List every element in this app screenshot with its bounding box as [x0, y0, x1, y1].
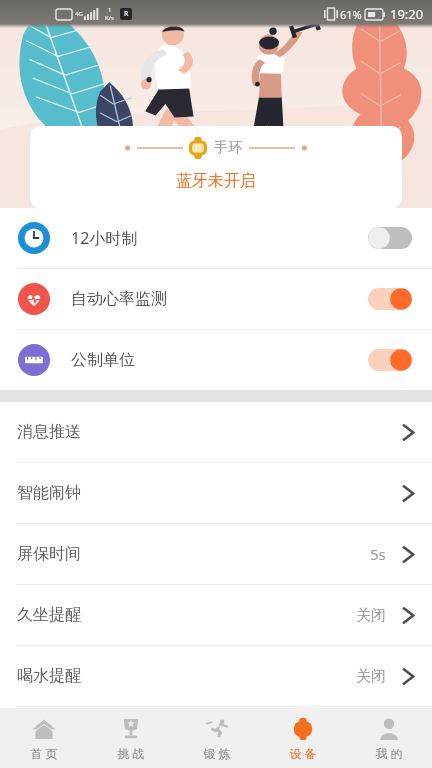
staticText: 屏保时间: [17, 544, 81, 564]
staticText: 自动心率监测: [71, 289, 167, 309]
button[interactable]: 公制单位 开: [368, 349, 412, 371]
button[interactable]: 我 的: [346, 708, 432, 768]
staticText: 关闭: [356, 606, 386, 625]
staticText: 设 备: [289, 745, 317, 761]
button[interactable]: 12小时制: [0, 208, 432, 268]
button[interactable]: 公制单位: [0, 330, 432, 390]
staticText: R: [124, 9, 129, 19]
staticText: 19:20: [390, 5, 424, 23]
staticText: 喝水提醒: [17, 666, 81, 686]
staticText: 关闭: [356, 667, 386, 686]
staticText: 手环: [214, 139, 242, 157]
button[interactable]: 屏保时间: [0, 524, 432, 584]
button[interactable]: 喝水提醒: [0, 646, 432, 706]
button[interactable]: 消息推送: [0, 402, 432, 462]
staticText: 挑 战: [117, 745, 145, 761]
staticText: 1: [108, 6, 112, 14]
button[interactable]: 智能闹钟: [0, 463, 432, 523]
staticText: 蓝牙未开启: [176, 171, 256, 191]
staticText: K/s: [105, 14, 114, 22]
button[interactable]: 自动心率监测 开: [368, 288, 412, 310]
staticText: 我 的: [375, 745, 403, 761]
button[interactable]: 锻 炼: [174, 708, 260, 768]
staticText: 久坐提醒: [17, 605, 81, 625]
button[interactable]: 12小时制 关: [368, 227, 412, 249]
staticText: 公制单位: [71, 350, 135, 370]
button[interactable]: 自动心率监测: [0, 269, 432, 329]
button[interactable]: 设 备: [260, 708, 346, 768]
staticText: 61%: [340, 7, 362, 22]
button[interactable]: 首 页: [0, 708, 87, 768]
staticText: 首 页: [30, 745, 58, 761]
button[interactable]: 手环: [30, 126, 402, 208]
button[interactable]: 挑 战: [87, 708, 174, 768]
staticText: 5s: [370, 544, 386, 564]
button[interactable]: 久坐提醒: [0, 585, 432, 645]
staticText: 消息推送: [17, 422, 81, 442]
staticText: 智能闹钟: [17, 483, 81, 503]
staticText: 4G: [75, 10, 83, 18]
staticText: 12小时制: [71, 227, 138, 249]
staticText: 锻 炼: [203, 745, 231, 761]
